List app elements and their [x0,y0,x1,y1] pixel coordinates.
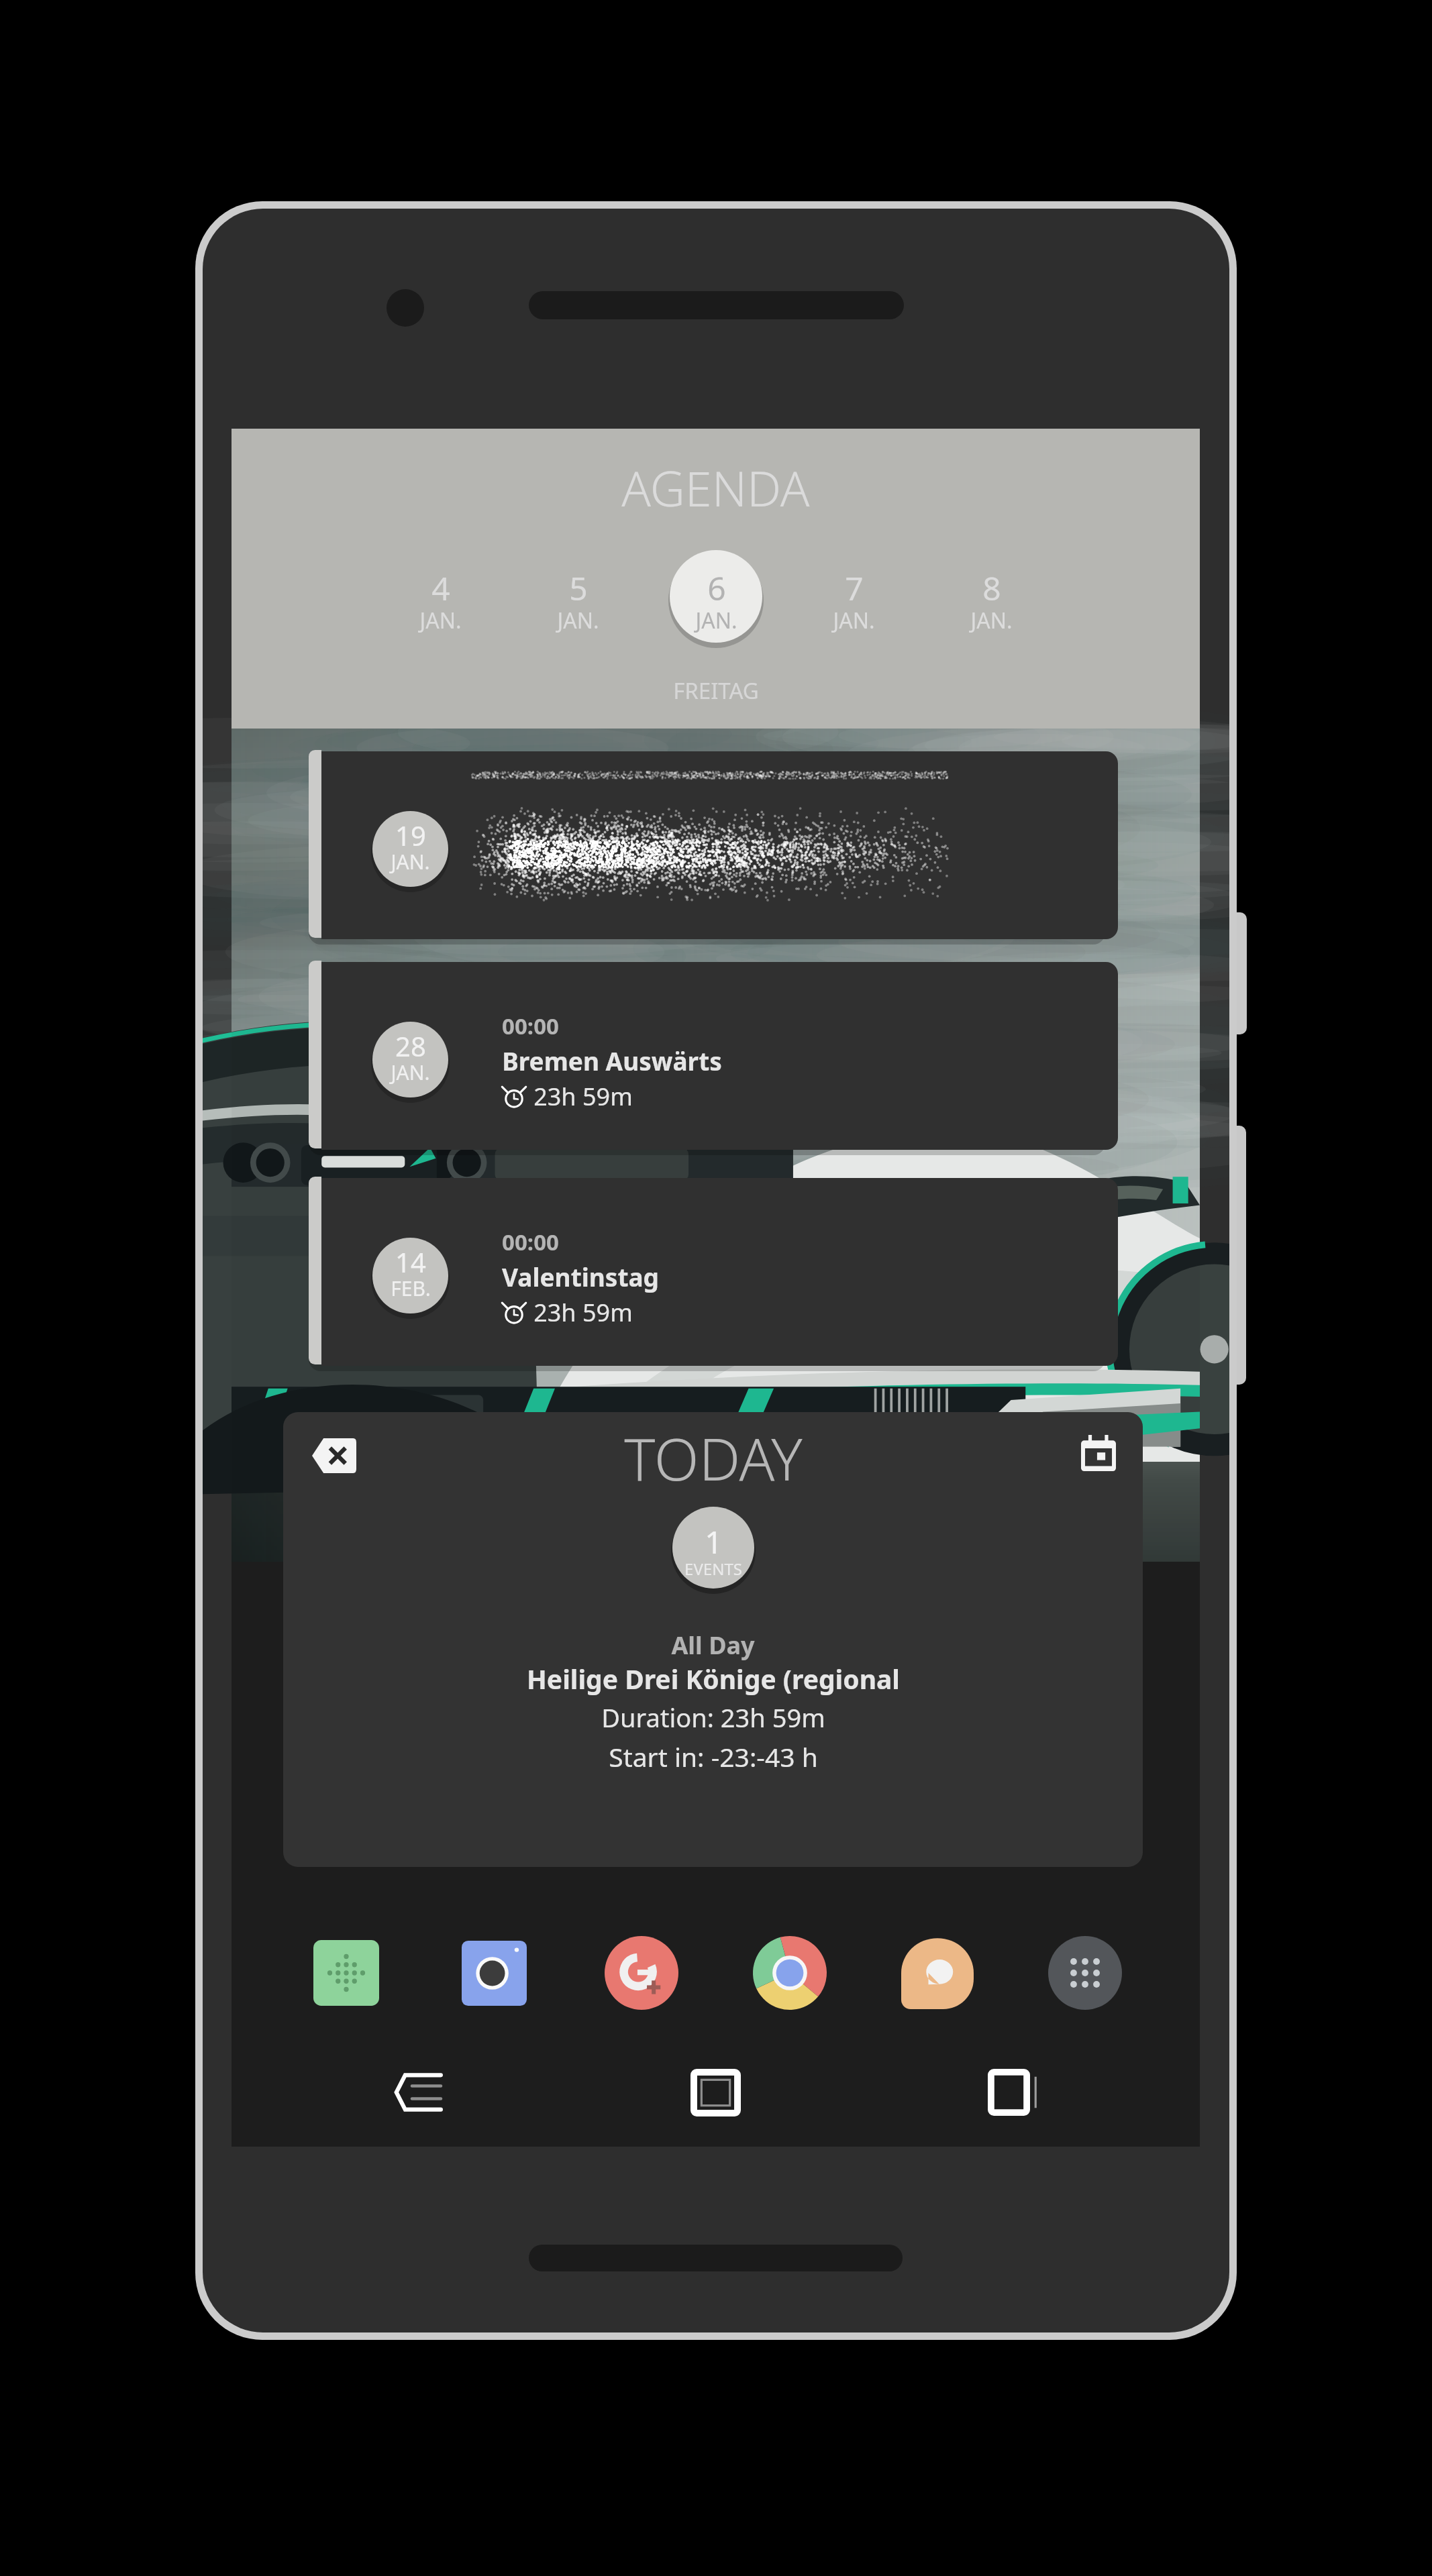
button[interactable]: Chrome [753,1936,827,2010]
button[interactable]: Back [368,2052,469,2133]
staticText: JAN. [970,606,1013,635]
staticText: Duration: 23h 59m [601,1700,825,1735]
button[interactable]: All apps [1048,1936,1122,2010]
staticText: FEB. [391,1275,431,1302]
staticText: Valentinstag [502,1260,659,1293]
staticText: JAN. [391,848,430,875]
button[interactable]: Messages [901,1936,974,2010]
staticText: 1 [705,1521,723,1563]
button[interactable]: Day 5 JAN. [529,553,627,651]
button[interactable]: Close [312,1438,356,1473]
staticText: 23h 59m [533,1080,633,1113]
staticText: 28 [395,1028,426,1064]
staticText: 14 [395,1244,426,1280]
button[interactable]: Google Plus [605,1936,678,2010]
staticText: 7 [845,566,864,610]
staticText: TODAY [624,1418,803,1497]
staticText: 19 [395,817,426,853]
staticText: 00:00 [502,1011,559,1041]
staticText: Heilige Drei Könige (regional [527,1661,900,1697]
button[interactable]: 28 [306,962,1103,1150]
staticText: JAN. [419,606,462,635]
staticText: Bremen Auswärts [502,1044,722,1077]
button[interactable]: Home [665,2052,766,2133]
staticText: JAN. [391,1059,430,1086]
button[interactable]: Day 7 JAN. [805,553,903,651]
staticText: 00:00 [502,1227,559,1257]
staticText: AGENDA [621,455,810,521]
staticText: 23h 59m [533,1296,633,1329]
staticText: All Day [671,1629,755,1662]
staticText: 6 [707,566,726,610]
button[interactable]: Recents [962,2052,1064,2133]
staticText: 4 [431,566,450,610]
button[interactable]: 19 [306,751,1103,939]
button[interactable]: 14 [306,1178,1103,1366]
button[interactable]: Day 6 JAN. [667,553,765,651]
staticText: 5 [569,566,588,610]
staticText: JAN. [695,606,737,635]
button[interactable]: Fitbit [309,1936,383,2010]
button[interactable]: Day 8 JAN. [942,553,1040,651]
staticText: EVENTS [684,1558,742,1580]
staticText: FREITAG [673,676,759,706]
staticText: JAN. [833,606,875,635]
button[interactable]: Day 4 JAN. [391,553,489,651]
staticText: JAN. [557,606,599,635]
staticText: Start in: -23:-43 h [609,1739,818,1774]
staticText: 8 [982,566,1001,610]
button[interactable]: Open calendar [1081,1435,1116,1471]
button[interactable]: Camera [457,1936,531,2010]
